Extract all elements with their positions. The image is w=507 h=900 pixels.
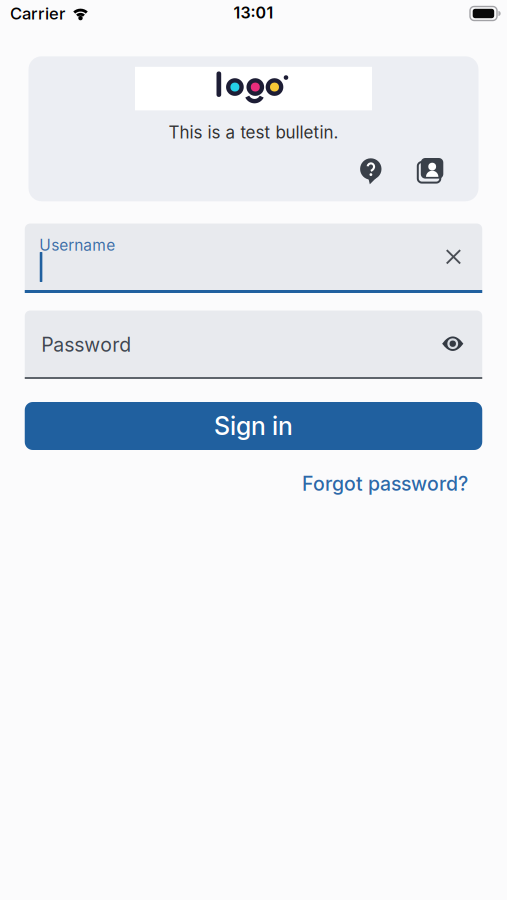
button[interactable] (416, 158, 444, 185)
staticText: Forgot password? (302, 472, 468, 496)
button[interactable]: Forgot password? (302, 472, 468, 496)
button[interactable] (442, 336, 464, 352)
staticText: Sign in (214, 411, 293, 441)
button[interactable]: Username (25, 223, 482, 293)
staticText: Username (39, 236, 115, 254)
staticText: Password (41, 333, 131, 357)
button[interactable] (446, 249, 461, 264)
staticText: This is a test bulletin. (168, 122, 338, 143)
staticText: 13:01 (233, 3, 273, 22)
button[interactable] (359, 156, 383, 184)
button[interactable]: Sign in (25, 402, 482, 450)
button[interactable]: Password (25, 310, 482, 379)
staticText: Carrier (10, 3, 65, 23)
